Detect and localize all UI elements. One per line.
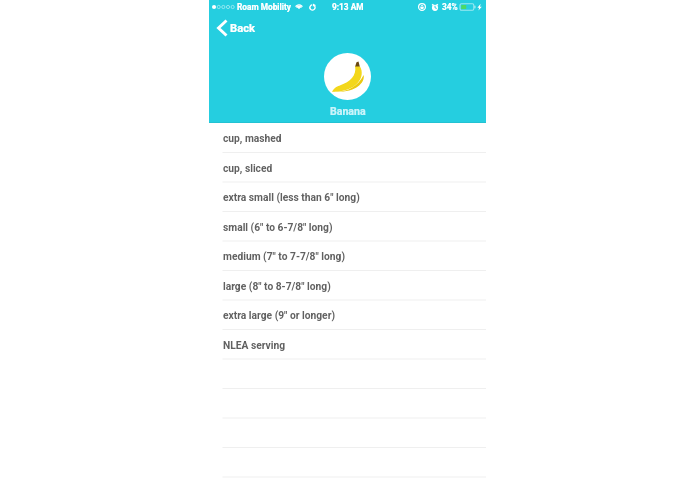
button[interactable]: small (6" to 6-7/8" long) (209, 212, 486, 242)
staticText: Back (230, 22, 255, 35)
button[interactable]: large (8" to 8-7/8" long) (209, 271, 486, 301)
button[interactable]: extra large (9" or longer) (209, 300, 486, 330)
button[interactable]: cup, mashed (209, 123, 486, 153)
button[interactable]: extra small (less than 6" long) (209, 182, 486, 212)
staticText: cup, sliced (223, 162, 273, 174)
staticText: large (8" to 8-7/8" long) (223, 280, 331, 292)
staticText: NLEA serving (223, 339, 286, 351)
staticText: medium (7" to 7-7/8" long) (223, 250, 346, 262)
staticText: Banana (330, 105, 366, 117)
staticText: extra large (9" or longer) (223, 309, 335, 321)
button[interactable]: Empty serving row (209, 418, 486, 448)
staticText: 34% (442, 2, 458, 12)
other: Back (217, 19, 228, 37)
staticText: extra small (less than 6" long) (223, 191, 360, 203)
button[interactable]: NLEA serving (209, 330, 486, 360)
button[interactable]: medium (7" to 7-7/8" long) (209, 241, 486, 271)
button[interactable]: cup, sliced (209, 153, 486, 183)
staticText: cup, mashed (223, 132, 282, 144)
button[interactable]: Empty serving row (209, 359, 486, 389)
button[interactable]: Back (213, 14, 261, 42)
staticText: 9:13 AM (332, 2, 364, 12)
staticText: Roam Mobility (237, 2, 291, 12)
staticText: small (6" to 6-7/8" long) (223, 221, 333, 233)
